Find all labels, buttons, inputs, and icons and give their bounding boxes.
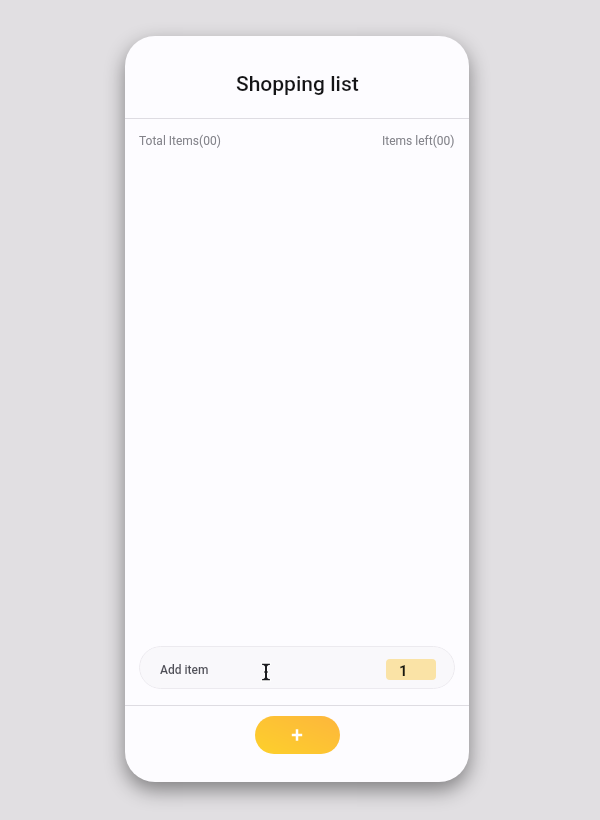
button[interactable]: Add item xyxy=(139,646,455,689)
staticText: Add item xyxy=(160,663,209,677)
staticText: 1 xyxy=(399,662,408,680)
staticText: Total Items(00) xyxy=(139,134,221,148)
staticText: Items left(00) xyxy=(382,134,455,148)
button[interactable]: Add item xyxy=(255,716,340,754)
staticText: Shopping list xyxy=(236,72,359,97)
button[interactable]: 1 xyxy=(386,659,436,680)
